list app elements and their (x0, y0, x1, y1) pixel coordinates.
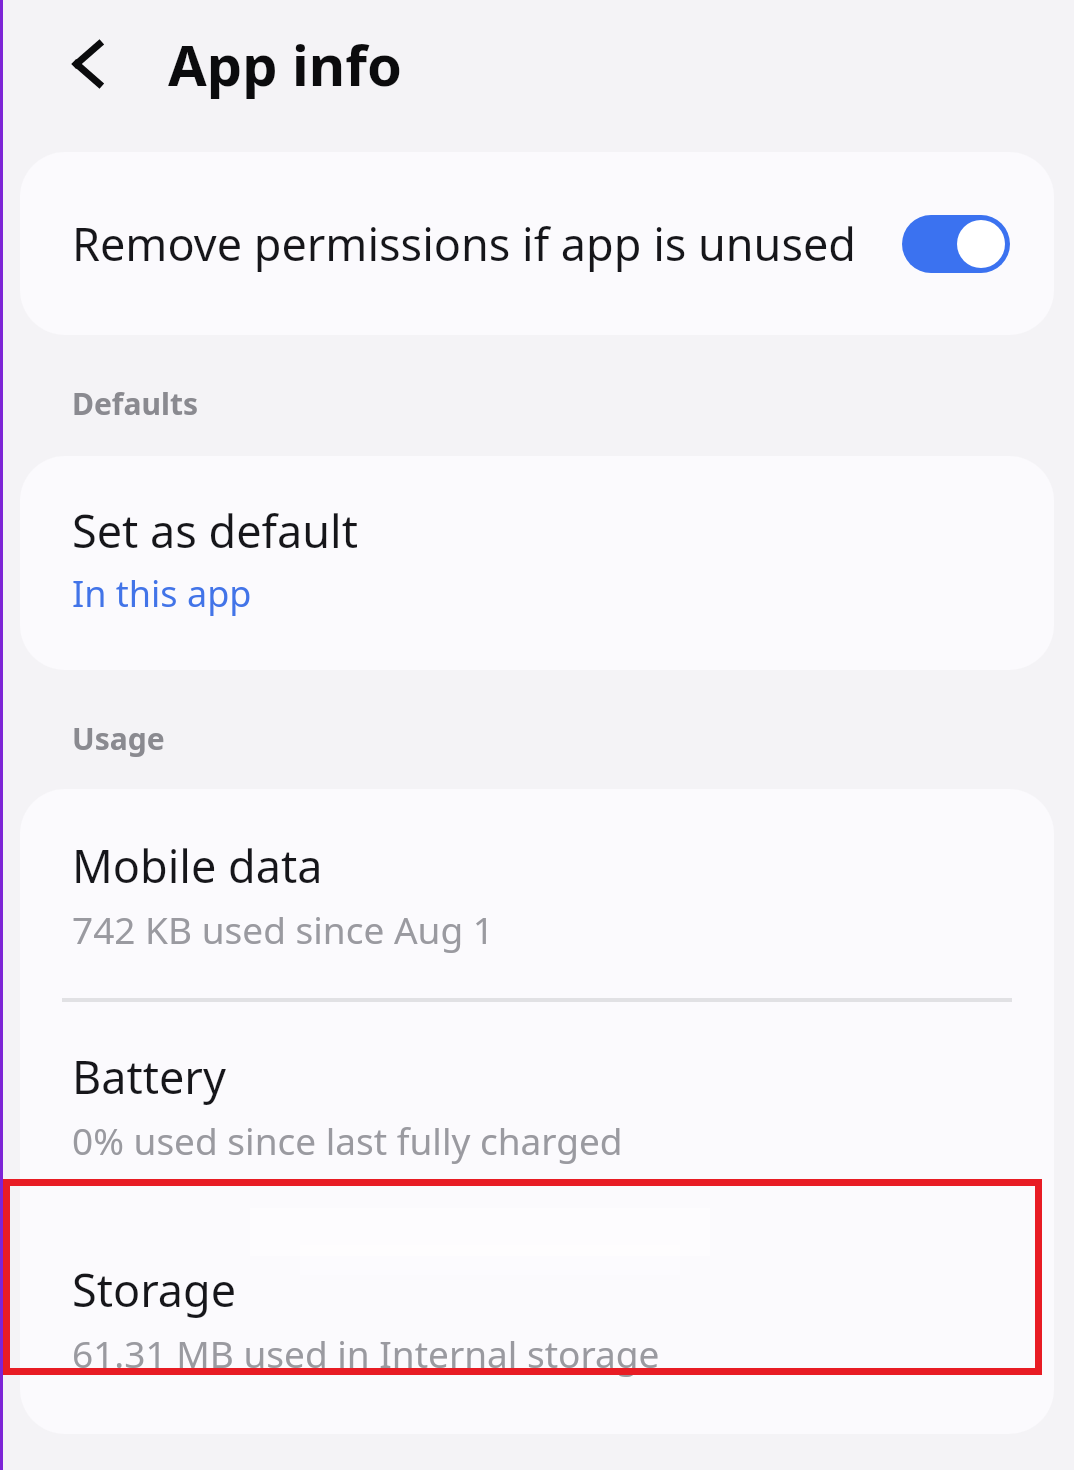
staticText: 0% used since last fully charged (72, 1115, 623, 1165)
staticText: Battery (72, 1046, 226, 1107)
staticText: Set as default (72, 500, 358, 561)
staticText: Usage (72, 718, 165, 759)
staticText: In this app (72, 569, 252, 618)
button[interactable]: Remove permissions if app is unused (20, 152, 1054, 335)
button[interactable]: Set as default (20, 456, 1054, 670)
staticText: 61.31 MB used in Internal storage (72, 1328, 660, 1378)
staticText: App info (168, 26, 402, 102)
button[interactable]: Mobile data (20, 789, 1054, 998)
staticText: Mobile data (72, 835, 323, 896)
button[interactable]: Storage (20, 1209, 1054, 1434)
staticText: Storage (72, 1259, 237, 1320)
staticText: Defaults (72, 383, 198, 424)
button[interactable]: Remove permissions toggle (902, 215, 1010, 273)
button[interactable]: Battery (20, 1002, 1054, 1209)
staticText: 742 KB used since Aug 1 (72, 904, 494, 954)
staticText: Remove permissions if app is unused (72, 213, 872, 274)
button[interactable]: Back (50, 22, 134, 106)
